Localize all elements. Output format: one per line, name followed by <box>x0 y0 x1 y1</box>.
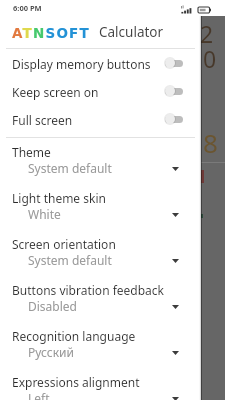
staticText: 6:00 PM <box>13 3 42 13</box>
staticText: Light theme skin <box>12 190 106 206</box>
staticText: Full screen <box>12 112 73 128</box>
button[interactable]: Full screen <box>0 106 201 134</box>
button[interactable]: Buttons vibration feedback <box>0 276 201 322</box>
button[interactable]: Screen orientation <box>0 230 201 276</box>
staticText: Left <box>28 390 50 400</box>
staticText: Display memory buttons <box>12 56 151 72</box>
button[interactable]: Keep screen on <box>0 78 201 106</box>
staticText: Recognition language <box>12 328 136 344</box>
staticText: Русский <box>28 344 74 360</box>
button[interactable]: Light theme skin <box>0 184 201 230</box>
button[interactable]: Display memory buttons <box>0 50 201 78</box>
staticText: System default <box>28 160 112 176</box>
staticText: ATNSOFT <box>12 25 90 41</box>
staticText: White <box>28 206 61 222</box>
button[interactable]: Expressions alignment <box>0 368 201 400</box>
staticText: Expressions alignment <box>12 374 140 390</box>
button[interactable]: Recognition language <box>0 322 201 368</box>
staticText: Screen orientation <box>12 236 116 252</box>
staticText: Theme <box>12 144 51 160</box>
staticText: 8 <box>203 125 218 160</box>
button[interactable]: Theme <box>0 138 201 184</box>
staticText: 2 <box>200 18 214 49</box>
staticText: Calculator <box>99 23 164 41</box>
staticText: Disabled <box>28 298 77 314</box>
staticText: System default <box>28 252 112 268</box>
staticText: Buttons vibration feedback <box>12 282 164 298</box>
staticText: 0 <box>203 43 217 74</box>
staticText: Keep screen on <box>12 84 99 100</box>
